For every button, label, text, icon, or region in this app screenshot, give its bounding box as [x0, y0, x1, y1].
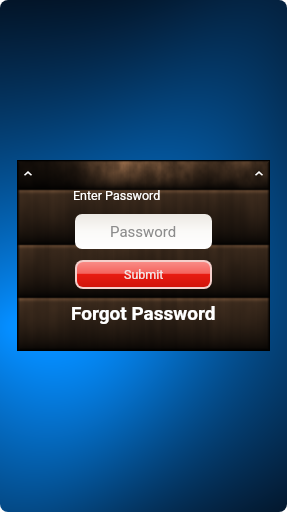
staticText: Password [110, 223, 177, 241]
button[interactable]: Password [75, 214, 212, 249]
button[interactable]: Forgot Password [17, 297, 270, 351]
staticText: Enter Password [73, 188, 161, 203]
button[interactable]: Collapse [20, 166, 36, 182]
staticText: Submit [124, 267, 164, 282]
button[interactable]: Collapse [251, 166, 267, 182]
button[interactable]: Submit [77, 262, 210, 287]
staticText: Forgot Password [71, 302, 216, 324]
